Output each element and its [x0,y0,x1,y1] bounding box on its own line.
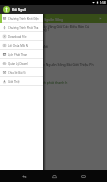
staticText: Đài Nguồ [12,8,27,12]
staticText: Chương Trình Phát Thanh Nguồn Sống [3,17,64,21]
button[interactable]: Lời Chúa Mỗi N [0,41,43,50]
button[interactable]: Giới Thiệ [0,77,43,86]
button[interactable]: Recents [77,170,89,182]
button[interactable]: Download File [0,32,43,41]
staticText: Lịch Phát Than [8,53,28,57]
staticText: Chương Trình Phát Tha [8,26,39,30]
button[interactable]: Chia Sẻ Bài Vi [0,68,43,77]
staticText: Giới Thiệ [8,80,20,84]
staticText: Quản Lý Downl [8,62,28,66]
button[interactable]: Đài Nguồ [0,5,107,14]
staticText: Download File [8,35,27,39]
button[interactable]: Home [48,170,60,182]
staticText: Chương Trình Thánh Nhạc Nguồn Sống Bài G… [3,62,94,67]
button[interactable]: Quản Lý Downl [0,59,43,68]
button[interactable]: Back [18,170,30,182]
staticText: Lịch tập dượt chương trình phát thanh h [3,80,68,85]
staticText: Phần 1 — Bài Giới Thiệu Mới [3,44,48,49]
staticText: Lời Chúa Mỗi N [8,44,28,48]
staticText: Nếu Bạn Yêu Mến Thầy Hãy Vâng Giữ Các Đi… [3,24,90,29]
staticText: 1:58 [100,1,106,5]
button[interactable]: Chương Trình Khởi Độn [0,14,43,23]
button[interactable]: Lịch Phát Than [0,50,43,59]
button[interactable]: Chương Trình Phát Tha [0,23,43,32]
staticText: Chương Trình Khởi Độn [8,17,39,21]
staticText: Chia Sẻ Bài Vi [8,71,26,75]
button[interactable]: Chương Trình Phát Thanh Nguồn Sống [0,14,107,23]
staticText: Mục Sư Nguyễn Văn Hoàng T [3,27,50,32]
